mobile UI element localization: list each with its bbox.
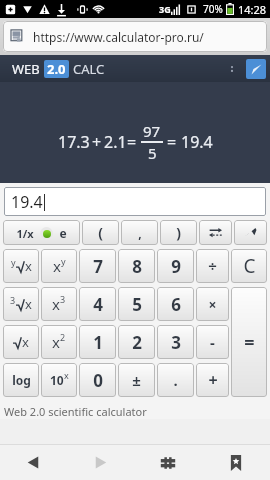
- staticText: 9: [171, 255, 181, 278]
- staticText: 2.1: [104, 131, 127, 153]
- button[interactable]: 6: [157, 287, 194, 321]
- staticText: WEB: [12, 60, 40, 78]
- button[interactable]: 19.4: [4, 187, 266, 216]
- button[interactable]: 1: [79, 325, 116, 359]
- staticText: 0: [93, 369, 103, 392]
- button[interactable]: Equals: [231, 287, 267, 397]
- staticText: y: [11, 256, 16, 268]
- button[interactable]: ÷: [196, 249, 229, 283]
- staticText: 14:28: [238, 2, 267, 17]
- button[interactable]: Tabs: [134, 445, 202, 480]
- button[interactable]: x: [41, 325, 77, 359]
- staticText: x: [25, 295, 32, 313]
- button[interactable]: 10: [41, 363, 77, 397]
- staticText: ±: [132, 370, 141, 390]
- staticText: x: [25, 257, 32, 275]
- button[interactable]: 4: [79, 287, 116, 321]
- button[interactable]: Bookmarks: [202, 445, 270, 480]
- button[interactable]: x: [41, 249, 77, 283]
- staticText: ×: [208, 295, 217, 314]
- button[interactable]: 9: [157, 249, 194, 283]
- staticText: Web 2.0 scientific calculator: [4, 404, 147, 419]
- staticText: 5: [148, 143, 157, 163]
- staticText: 1/x: [16, 226, 34, 241]
- staticText: x: [53, 256, 61, 276]
- staticText: =: [127, 131, 137, 153]
- staticText: +: [92, 131, 102, 153]
- staticText: 70%: [203, 2, 223, 16]
- staticText: e: [59, 225, 67, 241]
- button[interactable]: x: [41, 287, 77, 321]
- button[interactable]: 2: [118, 325, 155, 359]
- button[interactable]: .: [157, 363, 194, 397]
- staticText: 3G: [159, 3, 171, 15]
- staticText: 4: [93, 293, 103, 316]
- staticText: y: [61, 255, 66, 267]
- staticText: C: [243, 253, 256, 279]
- staticText: =: [167, 131, 177, 153]
- button[interactable]: 3: [157, 325, 194, 359]
- staticText: (: [98, 223, 103, 242]
- staticText: x: [64, 369, 69, 381]
- staticText: 19.4: [181, 131, 213, 153]
- button[interactable]: comma: [121, 220, 158, 245]
- staticText: 7: [93, 255, 103, 278]
- button[interactable]: Forward: [67, 445, 134, 480]
- button[interactable]: https://www.calculator-pro.ru/: [3, 21, 267, 52]
- button[interactable]: x: [3, 287, 39, 321]
- button[interactable]: x: [3, 249, 39, 283]
- button[interactable]: -: [196, 325, 229, 359]
- staticText: https://www.calculator-pro.ru/: [33, 29, 204, 45]
- staticText: =: [244, 330, 255, 355]
- staticText: 97: [143, 121, 161, 141]
- staticText: 5: [132, 293, 142, 316]
- staticText: 6: [171, 293, 181, 316]
- staticText: 1: [93, 331, 103, 354]
- staticText: .: [173, 370, 178, 390]
- button[interactable]: Back: [0, 445, 67, 480]
- button[interactable]: Expand: [246, 59, 266, 79]
- button[interactable]: 5: [118, 287, 155, 321]
- button[interactable]: 1 over x and e: [3, 220, 80, 245]
- staticText: ÷: [208, 256, 217, 276]
- button[interactable]: +: [196, 363, 229, 397]
- button[interactable]: 8: [118, 249, 155, 283]
- button[interactable]: open bracket: [82, 220, 119, 245]
- staticText: x: [52, 294, 60, 314]
- button[interactable]: ×: [196, 287, 229, 321]
- staticText: x: [22, 333, 29, 351]
- staticText: 2: [60, 331, 66, 343]
- staticText: -: [210, 332, 215, 352]
- button[interactable]: 0: [79, 363, 116, 397]
- button[interactable]: 7: [79, 249, 116, 283]
- button[interactable]: x: [3, 325, 39, 359]
- staticText: ,: [138, 225, 142, 241]
- staticText: 3: [171, 331, 181, 354]
- staticText: 17.3: [58, 131, 90, 153]
- staticText: 8: [132, 255, 142, 278]
- staticText: ): [176, 223, 181, 242]
- staticText: CALC: [73, 60, 105, 78]
- staticText: 3: [10, 294, 16, 306]
- staticText: 3: [60, 293, 66, 305]
- button[interactable]: Clear: [231, 249, 267, 283]
- staticText: log: [12, 372, 31, 388]
- button[interactable]: close bracket: [160, 220, 197, 245]
- staticText: +: [208, 369, 218, 391]
- staticText: 10: [50, 372, 64, 388]
- staticText: 19.4: [11, 191, 43, 213]
- staticText: x: [52, 332, 60, 352]
- staticText: 2.0: [47, 60, 66, 78]
- button[interactable]: log: [3, 363, 39, 397]
- staticText: 2: [132, 331, 142, 354]
- button[interactable]: swap: [199, 220, 232, 245]
- button[interactable]: enter: [234, 220, 267, 245]
- button[interactable]: More options: [224, 61, 240, 77]
- button[interactable]: ±: [118, 363, 155, 397]
